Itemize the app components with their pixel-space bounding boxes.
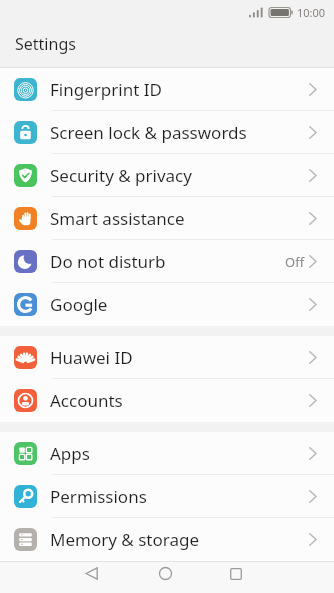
staticText: Permissions <box>50 485 147 508</box>
staticText: Settings <box>15 33 76 55</box>
staticText: Google <box>50 293 108 316</box>
staticText: Smart assistance <box>50 207 185 230</box>
button[interactable]: Huawei ID <box>0 336 334 379</box>
button[interactable]: Smart assistance <box>0 197 334 240</box>
staticText: Off <box>285 253 305 271</box>
button[interactable]: Accounts <box>0 379 334 422</box>
button[interactable]: Memory & storage <box>0 518 334 561</box>
button[interactable]: Permissions <box>0 475 334 518</box>
button[interactable] <box>71 561 111 586</box>
button[interactable]: Fingerprint ID <box>0 68 334 111</box>
button[interactable] <box>145 561 185 586</box>
button[interactable]: Apps <box>0 432 334 475</box>
button[interactable]: Google <box>0 283 334 326</box>
staticText: Accounts <box>50 389 123 412</box>
staticText: Apps <box>50 442 90 465</box>
staticText: Do not disturb <box>50 250 166 273</box>
button[interactable]: Do not disturb <box>0 240 334 283</box>
staticText: Fingerprint ID <box>50 78 162 101</box>
button[interactable]: Screen lock & passwords <box>0 111 334 154</box>
staticText: Memory & storage <box>50 528 199 551</box>
staticText: Security & privacy <box>50 164 192 187</box>
staticText: Huawei ID <box>50 346 133 369</box>
staticText: Screen lock & passwords <box>50 121 247 144</box>
staticText: 10:00 <box>297 5 326 20</box>
button[interactable]: Security & privacy <box>0 154 334 197</box>
button[interactable] <box>216 561 256 586</box>
